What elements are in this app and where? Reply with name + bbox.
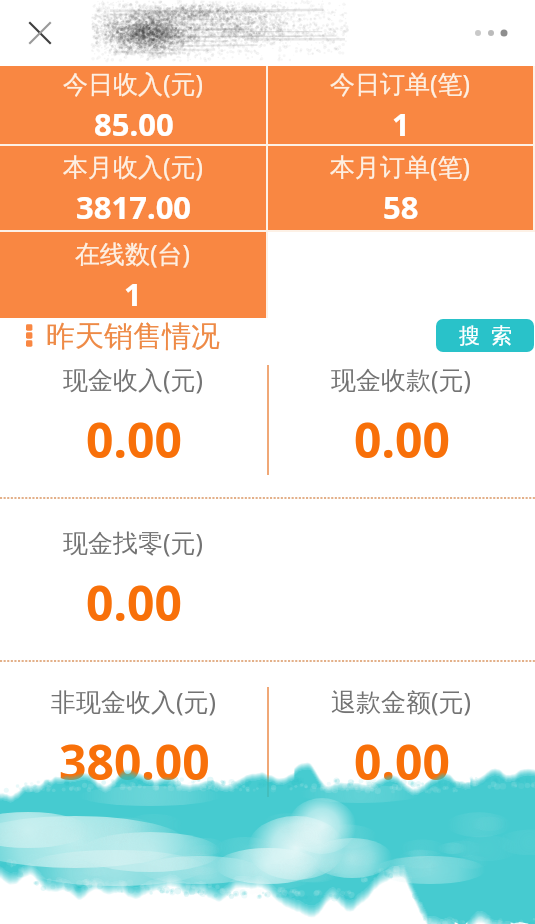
staticText: 退款金额(元) [331, 684, 472, 718]
button[interactable]: 搜 索 [436, 319, 534, 352]
button[interactable]: 本月订单(笔) [268, 146, 533, 230]
button[interactable]: 今日订单(笔) [268, 66, 533, 144]
staticText: 1 [392, 103, 410, 144]
staticText: 本月收入(元) [63, 149, 204, 183]
staticText: 在线数(台) [75, 236, 191, 270]
button[interactable]: 现金找零(元) [0, 499, 267, 660]
button[interactable]: 在线数(台) [0, 232, 266, 318]
button[interactable]: 现金收入(元) [0, 353, 267, 497]
button[interactable]: Close [16, 9, 64, 57]
staticText: 0.00 [86, 570, 182, 635]
staticText: 现金收款(元) [331, 362, 472, 396]
button[interactable]: 本月收入(元) [0, 146, 266, 230]
button[interactable]: 退款金额(元) [267, 662, 535, 823]
staticText: 现金收入(元) [63, 362, 204, 396]
staticText: 现金找零(元) [63, 525, 204, 559]
staticText: 本月订单(笔) [330, 149, 471, 183]
button[interactable]: 今日收入(元) [0, 66, 266, 144]
staticText: 今日订单(笔) [330, 66, 471, 100]
staticText: 380.00 [59, 729, 210, 794]
button[interactable]: 现金收款(元) [267, 353, 535, 497]
staticText: 58 [383, 186, 419, 228]
button[interactable]: More options [467, 11, 515, 55]
staticText: 今日收入(元) [63, 66, 204, 100]
staticText: 0.00 [354, 729, 450, 794]
staticText: 非现金收入(元) [51, 684, 217, 718]
button[interactable]: 非现金收入(元) [0, 662, 267, 823]
staticText: 昨天销售情况 [46, 318, 220, 353]
staticText: 0.00 [354, 407, 450, 472]
staticText: 1 [124, 273, 142, 315]
staticText: 85.00 [94, 103, 174, 144]
button[interactable]: 昨天销售情况 [26, 318, 220, 353]
staticText: 3817.00 [76, 186, 192, 228]
staticText: 搜 索 [459, 321, 512, 350]
staticText: 0.00 [86, 407, 182, 472]
